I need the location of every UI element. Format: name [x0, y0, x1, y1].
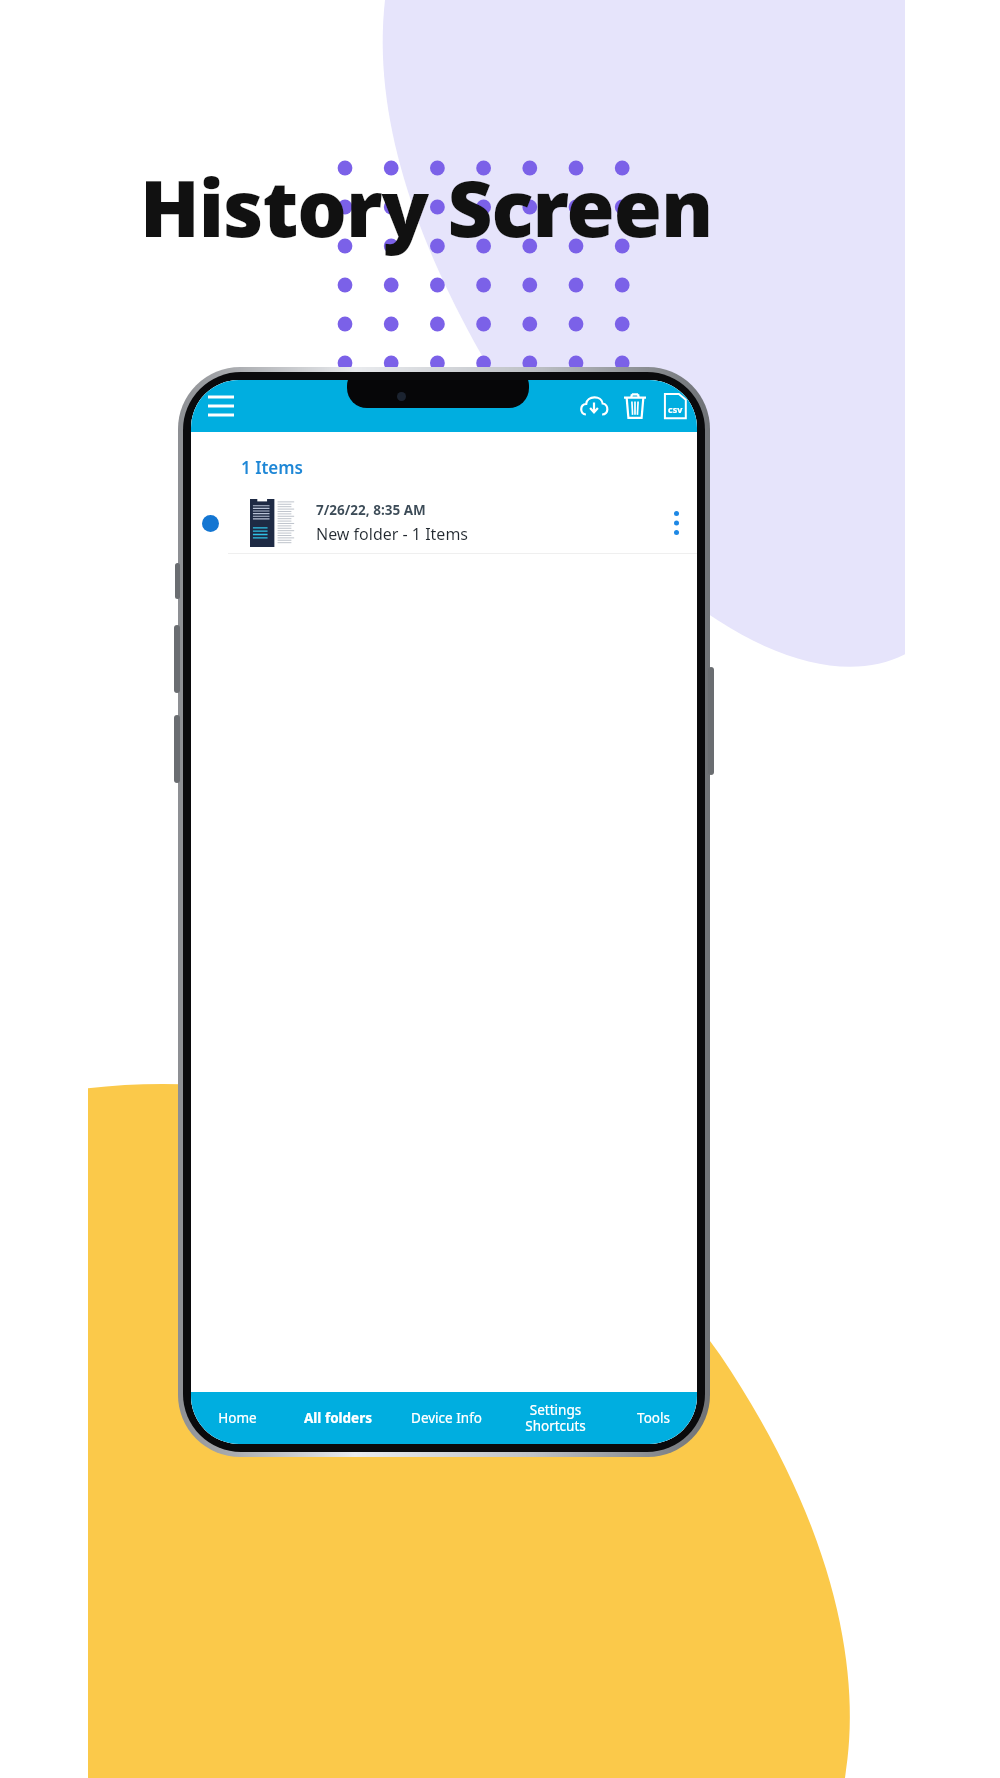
staticText: 1 Items — [241, 456, 303, 479]
button[interactable]: Tools — [609, 1392, 697, 1444]
button[interactable]: Device Info — [391, 1392, 502, 1444]
button[interactable]: Unread — [202, 515, 219, 532]
staticText: Settings Shortcuts — [525, 1401, 586, 1435]
staticText: 7/26/22, 8:35 AM — [316, 501, 426, 519]
button[interactable]: Download — [573, 385, 615, 427]
staticText: csv — [668, 403, 683, 415]
staticText: History Screen — [140, 154, 713, 260]
button[interactable]: Settings Shortcuts — [502, 1392, 609, 1444]
button[interactable]: 7/26/22, 8:35 AM — [228, 493, 697, 553]
staticText: All folders — [304, 1409, 372, 1427]
staticText: Home — [218, 1409, 257, 1427]
staticText: New folder - 1 Items — [316, 523, 469, 545]
button[interactable]: All folders — [284, 1392, 391, 1444]
button[interactable]: Delete — [615, 386, 655, 426]
button[interactable]: Menu — [204, 389, 238, 423]
button[interactable]: Home — [191, 1392, 284, 1444]
button[interactable]: Export CSV — [655, 386, 695, 426]
staticText: Tools — [637, 1409, 670, 1427]
button[interactable]: More options — [659, 506, 693, 540]
staticText: Device Info — [411, 1409, 482, 1427]
